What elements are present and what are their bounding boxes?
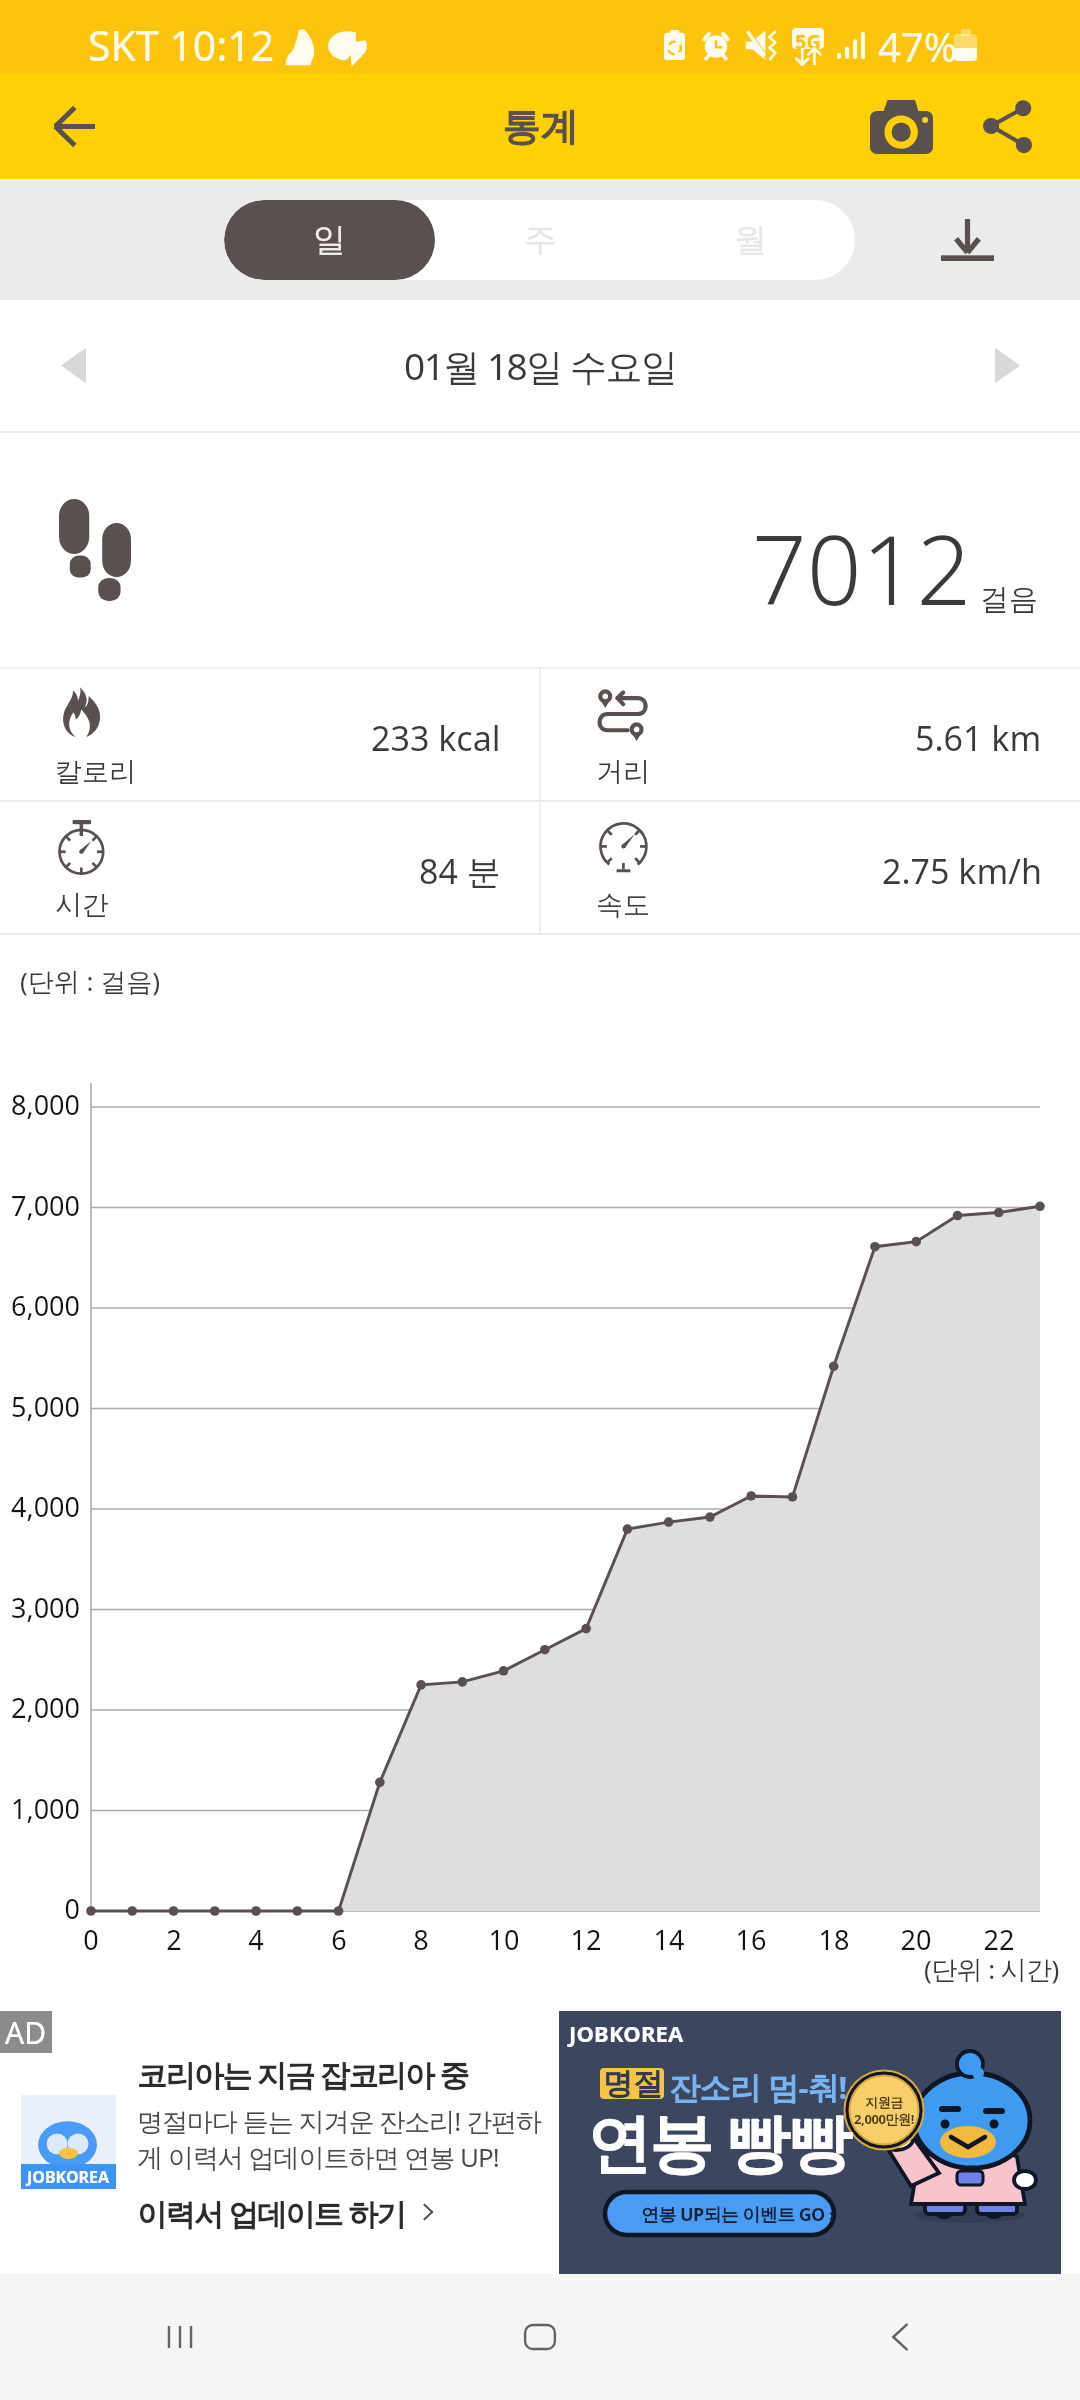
staticText: SKT 10:12 xyxy=(88,17,275,73)
button[interactable]: 시간 xyxy=(0,802,539,933)
staticText: 0 xyxy=(51,1921,131,1958)
button[interactable]: Home xyxy=(360,2274,720,2400)
staticText: (단위 : 걸음) xyxy=(20,963,161,999)
staticText: 7,000 xyxy=(0,1187,80,1224)
staticText: 47% xyxy=(878,19,957,73)
staticText: 01월 18일 수요일 xyxy=(404,340,677,391)
staticText: 4 xyxy=(216,1921,296,1958)
staticText: 월 xyxy=(734,219,767,261)
staticText: 2 xyxy=(134,1921,214,1958)
button[interactable]: 속도 xyxy=(541,802,1080,933)
staticText: AD xyxy=(5,2012,47,2053)
button[interactable]: JOBKOREA xyxy=(559,2011,1061,2274)
button[interactable]: 일 xyxy=(224,200,435,280)
staticText: 12 xyxy=(546,1921,626,1958)
staticText: 20 xyxy=(876,1921,956,1958)
staticText: 코리아는 지금 잡코리아 중 xyxy=(137,2054,468,2095)
button[interactable]: Back xyxy=(26,79,121,174)
button[interactable]: Recents xyxy=(0,2274,360,2400)
staticText: 연봉 빵빵 xyxy=(587,2098,850,2185)
staticText: 명절마다 듣는 지겨운 잔소리! 간편하 게 이력서 업데이트하면 연봉 UP! xyxy=(137,2103,542,2175)
button[interactable]: Back xyxy=(720,2274,1080,2400)
staticText: 4,000 xyxy=(0,1488,80,1525)
staticText: JOBKOREA xyxy=(569,2018,684,2048)
staticText: 2.75 km/h xyxy=(882,848,1042,894)
staticText: (단위 : 시간) xyxy=(924,1951,1059,1987)
button[interactable]: Camera xyxy=(854,74,949,179)
staticText: 2,000 xyxy=(0,1689,80,1726)
staticText: 속도 xyxy=(596,888,650,922)
staticText: 잔소리 멈-춰! xyxy=(669,2066,847,2108)
staticText: 10 xyxy=(464,1921,544,1958)
staticText: 주 xyxy=(524,219,557,261)
button[interactable]: Share xyxy=(961,74,1053,179)
staticText: 통계 xyxy=(502,103,578,151)
staticText: 5G xyxy=(795,28,821,49)
staticText: 1,000 xyxy=(0,1790,80,1827)
staticText: 8,000 xyxy=(0,1086,80,1123)
button[interactable]: 월 xyxy=(645,200,855,280)
staticText: 걸음 xyxy=(980,581,1038,618)
staticText: 거리 xyxy=(596,755,650,789)
staticText: 명절 xyxy=(603,2065,663,2103)
staticText: 일 xyxy=(313,219,346,261)
button[interactable]: Download xyxy=(926,179,1008,300)
staticText: 7012 xyxy=(752,502,972,633)
staticText: 0 xyxy=(0,1890,80,1927)
staticText: 지원금 2,000만원! xyxy=(850,2094,918,2128)
staticText: 연봉 UP되는 이벤트 GO › xyxy=(641,2202,835,2227)
staticText: 18 xyxy=(794,1921,874,1958)
staticText: 16 xyxy=(711,1921,791,1958)
button[interactable]: Previous day xyxy=(28,300,118,431)
staticText: 233 kcal xyxy=(371,715,501,761)
staticText: 시간 xyxy=(55,888,109,922)
staticText: 6,000 xyxy=(0,1287,80,1324)
staticText: 3,000 xyxy=(0,1589,80,1626)
staticText: 칼로리 xyxy=(55,755,136,789)
button[interactable]: 칼로리 xyxy=(0,669,539,800)
staticText: 6 xyxy=(299,1921,379,1958)
staticText: 8 xyxy=(381,1921,461,1958)
staticText: 14 xyxy=(629,1921,709,1958)
button[interactable]: 거리 xyxy=(541,669,1080,800)
staticText: 22 xyxy=(959,1921,1039,1958)
staticText: 이력서 업데이트 하기 xyxy=(137,2193,405,2234)
staticText: 84 분 xyxy=(419,848,501,894)
staticText: 5,000 xyxy=(0,1388,80,1425)
staticText: 5.61 km xyxy=(915,715,1042,761)
button[interactable]: AD xyxy=(0,2011,1080,2274)
staticText: JOBKOREA xyxy=(27,2166,110,2188)
button[interactable]: Next day xyxy=(962,300,1052,431)
